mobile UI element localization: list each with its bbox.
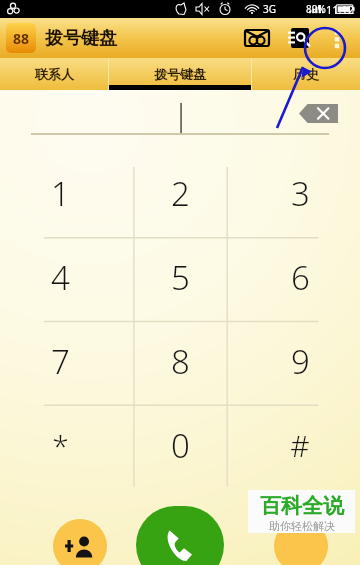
staticText: 拨号键盘 <box>154 66 206 82</box>
button[interactable]: Call <box>136 506 224 565</box>
staticText: 3 <box>291 171 310 216</box>
staticText: 89% <box>306 2 326 16</box>
staticText: 3G <box>263 2 276 16</box>
staticText: # <box>290 425 310 466</box>
staticText: 1 <box>51 171 70 216</box>
button[interactable]: 0 <box>120 403 240 487</box>
button[interactable]: 2 <box>120 152 240 235</box>
staticText: 百科全说 <box>260 493 344 519</box>
button[interactable]: Voicemail <box>240 21 274 55</box>
staticText: 5 <box>171 255 190 300</box>
button[interactable]: 1 <box>0 152 120 235</box>
staticText: 88 <box>13 29 30 48</box>
button[interactable]: 6 <box>240 235 360 319</box>
staticText: 助你轻松解决 <box>269 519 335 533</box>
staticText: 拨号键盘 <box>45 27 117 50</box>
button[interactable]: # <box>240 403 360 487</box>
staticText: * <box>52 425 69 466</box>
button[interactable]: 联系人 <box>0 58 108 90</box>
staticText: 8 <box>171 339 190 384</box>
staticText: 4 <box>51 255 70 300</box>
button[interactable]: 拨号键盘 <box>109 58 251 90</box>
staticText: 9 <box>291 339 310 384</box>
staticText: 2 <box>171 171 190 216</box>
button[interactable]: 5 <box>120 235 240 319</box>
button[interactable]: Search contacts <box>282 21 316 55</box>
button[interactable]: 8 <box>120 319 240 403</box>
staticText: 7 <box>51 339 70 384</box>
button[interactable]: 4 <box>0 235 120 319</box>
button[interactable]: More options <box>320 21 354 55</box>
button[interactable]: * <box>0 403 120 487</box>
staticText: 6 <box>291 255 310 300</box>
staticText: 11:12 <box>326 2 355 17</box>
button[interactable]: 9 <box>240 319 360 403</box>
staticText: 0 <box>171 423 190 468</box>
button[interactable]: Add contact <box>53 519 107 565</box>
button[interactable]: App icon <box>6 23 36 53</box>
button[interactable]: 7 <box>0 319 120 403</box>
staticText: 历史 <box>293 66 319 82</box>
button[interactable]: 3 <box>240 152 360 235</box>
button[interactable]: Delete <box>299 104 338 123</box>
button[interactable]: 历史 <box>252 58 360 90</box>
staticText: 联系人 <box>35 66 74 82</box>
button[interactable]: Dialpad options <box>274 519 328 565</box>
